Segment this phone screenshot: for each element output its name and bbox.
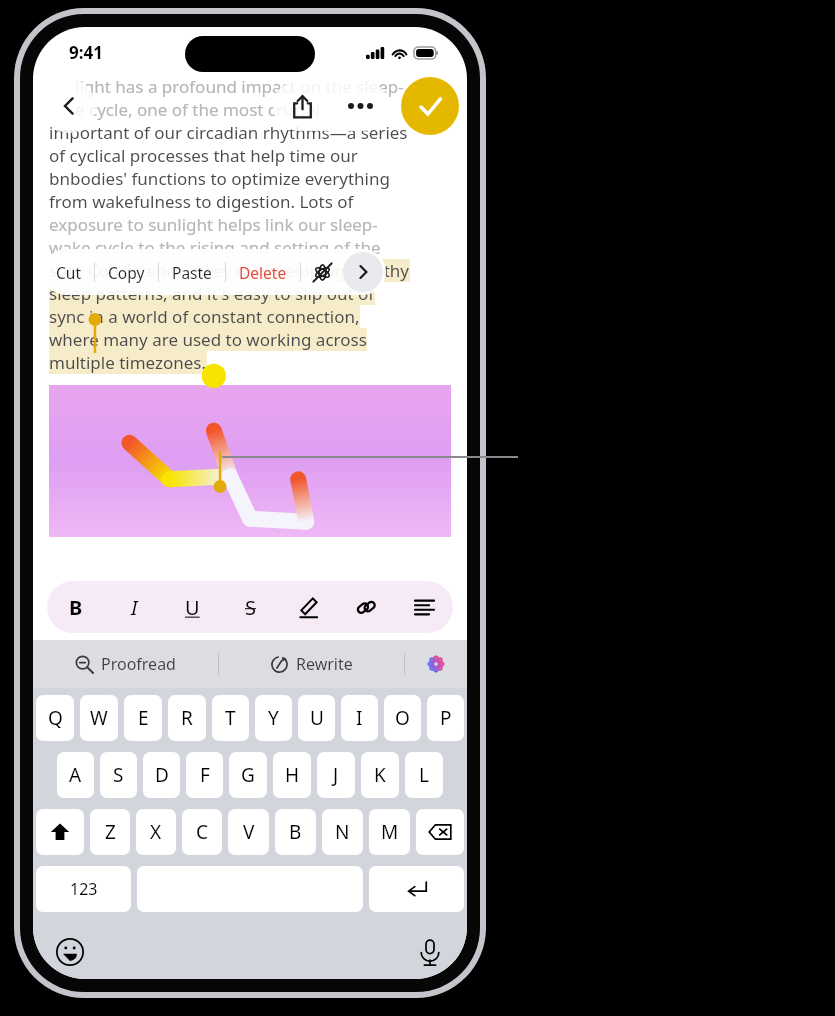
button[interactable]: B bbox=[275, 809, 316, 855]
staticText: sync in a world of constant connection, bbox=[49, 305, 360, 328]
button[interactable]: N bbox=[322, 809, 363, 855]
staticText: A bbox=[69, 762, 82, 788]
button[interactable]: M bbox=[369, 809, 410, 855]
staticText: S bbox=[113, 762, 124, 788]
button[interactable]: V bbox=[228, 809, 269, 855]
staticText: F bbox=[200, 762, 210, 788]
staticText: X bbox=[150, 819, 162, 845]
staticText: Copy bbox=[108, 262, 145, 283]
button[interactable]: D bbox=[143, 752, 180, 798]
button[interactable]: R bbox=[168, 695, 206, 741]
button[interactable]: Proofread bbox=[33, 640, 218, 688]
button[interactable]: Shift bbox=[36, 809, 84, 855]
button[interactable]: X bbox=[136, 809, 176, 855]
button[interactable]: Underline bbox=[163, 581, 221, 633]
button[interactable]: Apple Intelligence bbox=[405, 640, 467, 688]
button[interactable]: G bbox=[229, 752, 267, 798]
button[interactable]: Rewrite bbox=[219, 640, 404, 688]
staticText: Z bbox=[105, 819, 116, 845]
staticText: Cut bbox=[56, 262, 81, 283]
button[interactable]: More actions bbox=[343, 252, 383, 292]
button[interactable]: Delete bbox=[416, 809, 464, 855]
button[interactable]: P bbox=[427, 695, 464, 741]
button[interactable]: L bbox=[405, 752, 443, 798]
staticText: U bbox=[310, 705, 324, 731]
button[interactable]: Copy bbox=[95, 249, 158, 295]
button[interactable]: E bbox=[124, 695, 162, 741]
staticText: Q bbox=[48, 705, 63, 731]
button[interactable]: F bbox=[186, 752, 223, 798]
staticText: 9:41 bbox=[69, 41, 103, 64]
button[interactable]: Return bbox=[369, 866, 464, 912]
staticText: multiple timezones. bbox=[49, 351, 207, 374]
button[interactable]: K bbox=[361, 752, 399, 798]
button[interactable]: 123 bbox=[36, 866, 131, 912]
button[interactable]: C bbox=[182, 809, 222, 855]
staticText: K bbox=[374, 762, 386, 788]
staticText: S bbox=[245, 594, 256, 621]
staticText: Delete bbox=[239, 262, 287, 283]
button[interactable]: W bbox=[80, 695, 118, 741]
staticText: O bbox=[395, 705, 410, 731]
staticText: E bbox=[138, 705, 149, 731]
button[interactable]: Delete bbox=[226, 249, 300, 295]
staticText: 123 bbox=[70, 878, 98, 900]
button[interactable]: Highlight bbox=[279, 581, 337, 633]
staticText: where many are used to working across bbox=[49, 328, 367, 351]
staticText: I bbox=[131, 594, 138, 621]
staticText: G bbox=[241, 762, 255, 788]
button[interactable]: J bbox=[317, 752, 355, 798]
staticText: C bbox=[196, 819, 209, 845]
button[interactable]: Y bbox=[255, 695, 292, 741]
button[interactable]: Writing Tools bbox=[301, 249, 343, 295]
staticText: light has a profound impact on the sleep… bbox=[75, 75, 404, 98]
button[interactable]: List formatting bbox=[395, 581, 453, 633]
button[interactable]: More options bbox=[331, 81, 389, 131]
button[interactable]: Done bbox=[401, 77, 459, 135]
staticText: Rewrite bbox=[296, 653, 353, 675]
staticText: B bbox=[69, 594, 83, 621]
staticText: U bbox=[185, 594, 200, 621]
button[interactable]: T bbox=[212, 695, 249, 741]
button[interactable]: Q bbox=[36, 695, 74, 741]
button[interactable]: I bbox=[341, 695, 378, 741]
staticText: H bbox=[285, 762, 300, 788]
staticText: of cyclical processes that help time our bbox=[49, 144, 358, 167]
staticText: P bbox=[440, 705, 452, 731]
staticText: N bbox=[335, 819, 350, 845]
button[interactable]: Strikethrough bbox=[221, 581, 279, 633]
staticText: Y bbox=[268, 705, 279, 731]
staticText: important of our circadian rhythms—a ser… bbox=[49, 121, 408, 144]
button[interactable]: Italic bbox=[105, 581, 163, 633]
staticText: Consistency is key to developing healthy bbox=[88, 259, 410, 282]
button[interactable]: Emoji bbox=[49, 931, 91, 973]
staticText: sleep patterns, and it's easy to slip ou… bbox=[49, 282, 375, 305]
staticText: Proofread bbox=[101, 653, 176, 675]
button[interactable]: Link bbox=[337, 581, 395, 633]
button[interactable]: Dictate bbox=[409, 931, 451, 973]
button[interactable]: Cut bbox=[43, 249, 94, 295]
staticText: J bbox=[333, 762, 339, 788]
staticText: from wakefulness to digestion. Lots of bbox=[49, 190, 354, 213]
staticText: B bbox=[289, 819, 302, 845]
staticText: sun. bbox=[49, 259, 88, 282]
button[interactable]: S bbox=[100, 752, 137, 798]
button[interactable]: Bold bbox=[47, 581, 105, 633]
button[interactable]: H bbox=[273, 752, 311, 798]
staticText: bnbodies' functions to optimize everythi… bbox=[49, 167, 390, 190]
button[interactable]: O bbox=[384, 695, 421, 741]
staticText: e cycle, one of the most crucial bbox=[75, 98, 320, 121]
button[interactable]: A bbox=[57, 752, 94, 798]
staticText: wake cycle to the rising and setting of … bbox=[49, 236, 381, 259]
button[interactable]: Share bbox=[273, 81, 331, 131]
staticText: V bbox=[243, 819, 255, 845]
button[interactable]: Paste bbox=[159, 249, 225, 295]
button[interactable]: Back bbox=[42, 79, 96, 133]
staticText: L bbox=[419, 762, 429, 788]
staticText: R bbox=[181, 705, 193, 731]
staticText: Paste bbox=[172, 262, 212, 283]
button[interactable]: Z bbox=[90, 809, 130, 855]
button[interactable]: U bbox=[298, 695, 335, 741]
staticText: I bbox=[356, 705, 363, 731]
